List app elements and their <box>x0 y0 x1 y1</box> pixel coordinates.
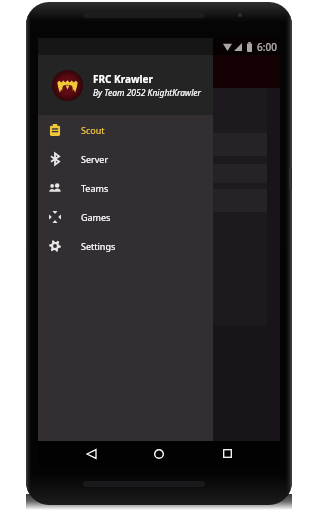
staticText: 6:00 <box>257 40 277 54</box>
button[interactable]: Scout <box>38 115 213 144</box>
staticText: Settings <box>81 240 116 252</box>
button[interactable]: Games <box>38 202 213 231</box>
staticText: Scout <box>81 124 105 136</box>
staticText: Server <box>81 153 109 165</box>
staticText: Teams <box>81 182 109 194</box>
button[interactable]: Settings <box>38 231 213 260</box>
button[interactable]: Teams <box>38 173 213 202</box>
staticText: FRC Krawler <box>93 72 153 86</box>
button[interactable]: Server <box>38 144 213 173</box>
button[interactable]: Recent apps <box>208 441 246 466</box>
button[interactable] <box>51 189 267 212</box>
button[interactable]: Back <box>72 441 110 466</box>
button[interactable]: Home <box>140 441 178 466</box>
staticText: Games <box>81 211 111 223</box>
button[interactable] <box>51 133 267 156</box>
staticText: By Team 2052 KnightKrawler <box>93 87 201 99</box>
button[interactable] <box>51 164 267 183</box>
